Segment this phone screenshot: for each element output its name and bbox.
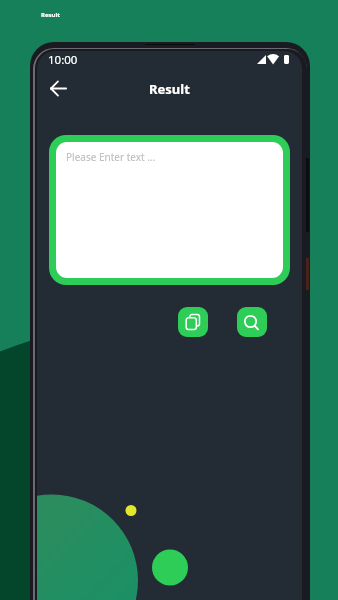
- staticText: 10:00: [48, 52, 78, 68]
- staticText: Please Enter text ...: [66, 150, 156, 164]
- button[interactable]: Please Enter text ...: [56, 142, 283, 278]
- button[interactable]: Back: [44, 74, 72, 102]
- staticText: Result: [149, 80, 190, 98]
- button[interactable]: Search: [237, 307, 267, 337]
- staticText: Result: [41, 11, 60, 19]
- button[interactable]: Copy: [178, 307, 208, 337]
